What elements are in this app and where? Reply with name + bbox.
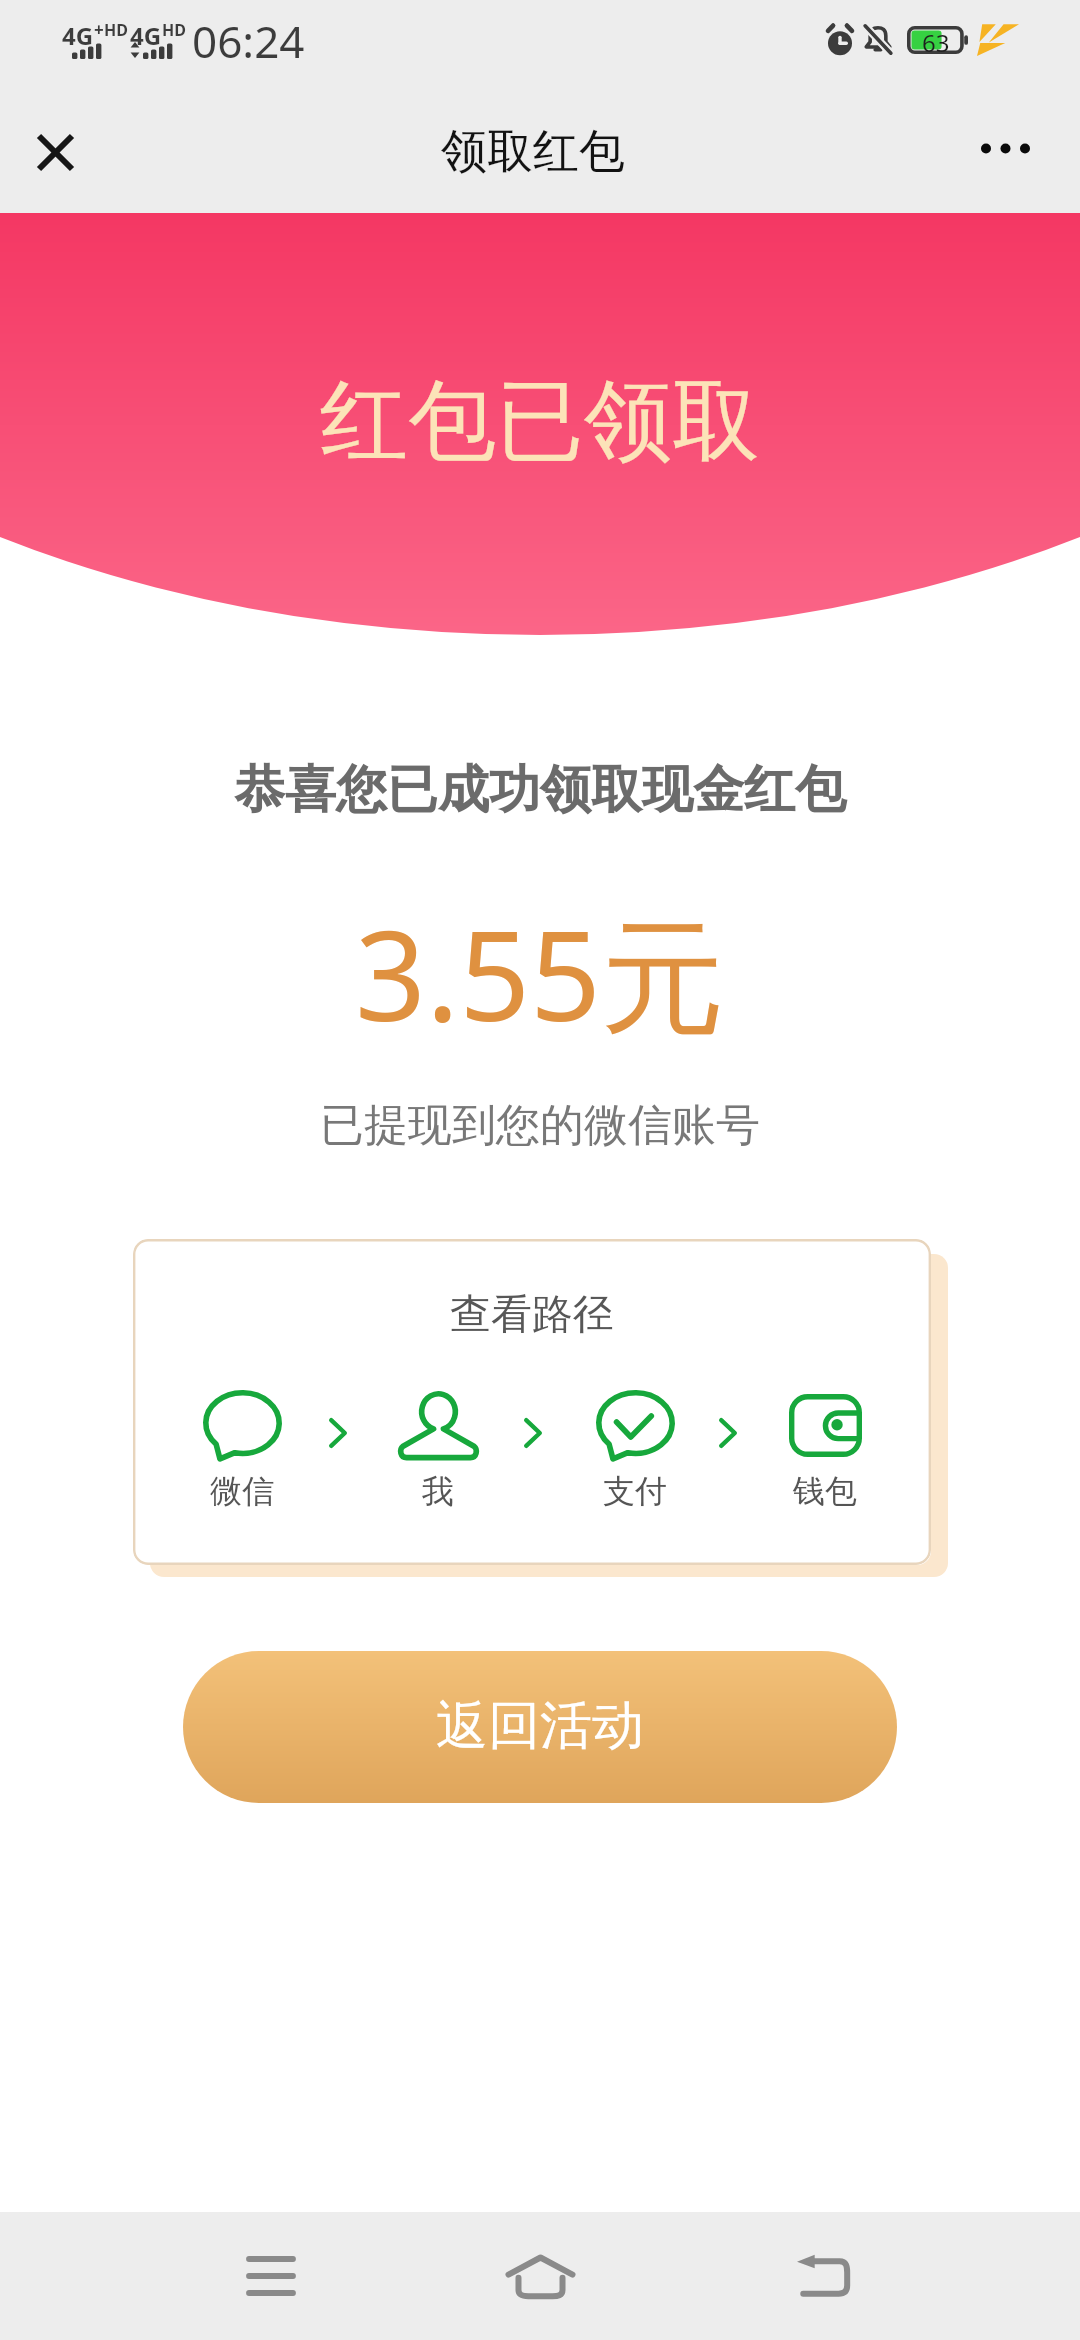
button[interactable]: Close [18, 115, 92, 189]
staticText: 4G [62, 19, 94, 52]
button[interactable]: 支付 [575, 1388, 695, 1511]
staticText: 06:24 [192, 11, 305, 71]
staticText: 微信 [210, 1471, 274, 1511]
staticText: 已提现到您的微信账号 [320, 1098, 760, 1153]
staticText: 恭喜您已成功领取现金红包 [234, 758, 846, 822]
button[interactable]: 我 [378, 1388, 498, 1511]
button[interactable]: Back [763, 2212, 883, 2340]
staticText: 我 [422, 1471, 454, 1511]
button[interactable]: Home [480, 2212, 600, 2340]
staticText: 3.55元 [355, 888, 726, 1057]
staticText: 4G [130, 19, 162, 52]
button[interactable]: Recents [211, 2212, 331, 2340]
staticText: 63 [922, 26, 950, 54]
button[interactable]: More options [968, 111, 1042, 185]
staticText: 返回活动 [436, 1693, 644, 1759]
staticText: 支付 [603, 1471, 667, 1511]
staticText: HD [104, 19, 128, 41]
staticText: 钱包 [793, 1471, 857, 1511]
staticText: + [94, 18, 104, 41]
button[interactable]: 微信 [182, 1388, 302, 1511]
staticText: 红包已领取 [320, 366, 760, 477]
staticText: HD [162, 19, 186, 41]
button[interactable]: 返回活动 [183, 1651, 897, 1803]
staticText: 查看路径 [450, 1289, 614, 1341]
staticText: 领取红包 [441, 123, 625, 181]
button[interactable]: 钱包 [765, 1388, 885, 1511]
